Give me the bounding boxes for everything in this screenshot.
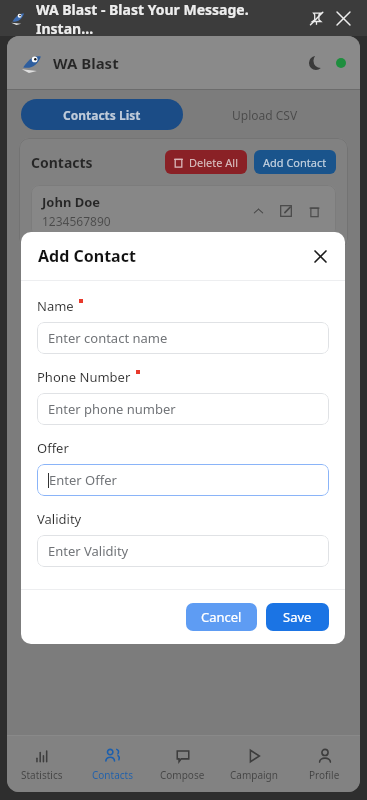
staticText: Offer: [37, 439, 69, 457]
staticText: Upload CSV: [232, 107, 298, 123]
staticText: Contacts List: [63, 107, 141, 123]
staticText: Validity: [37, 510, 82, 528]
button[interactable]: Toggle dark mode: [302, 49, 330, 77]
staticText: Statistics: [21, 768, 63, 782]
button[interactable]: Enter Offer: [37, 464, 329, 496]
staticText: Contacts: [92, 768, 133, 782]
button[interactable]: Enter contact name: [37, 322, 329, 354]
staticText: Enter contact name: [48, 329, 168, 347]
staticText: Name: [37, 297, 74, 315]
staticText: 1234567890: [42, 213, 111, 229]
button[interactable]: Add Contact: [254, 150, 336, 174]
button[interactable]: Close dialog: [305, 241, 335, 271]
button[interactable]: Delete All: [165, 150, 247, 174]
staticText: Compose: [160, 768, 205, 782]
staticText: Save: [283, 608, 312, 626]
staticText: Cancel: [201, 608, 242, 626]
button[interactable]: Campaign: [218, 736, 289, 792]
staticText: WA Blast: [53, 53, 119, 73]
button[interactable]: Profile: [289, 736, 360, 792]
button[interactable]: Enter Validity: [37, 535, 329, 567]
button[interactable]: Save: [266, 603, 329, 631]
button[interactable]: Cancel: [186, 603, 257, 631]
staticText: Contacts: [31, 153, 93, 172]
button[interactable]: Close: [329, 4, 357, 32]
button[interactable]: Compose: [147, 736, 218, 792]
staticText: Delete All: [189, 155, 239, 170]
button[interactable]: Contacts List: [21, 99, 183, 130]
button[interactable]: Collapse: [247, 200, 269, 222]
button[interactable]: Edit contact: [275, 200, 297, 222]
staticText: Add Contact: [263, 155, 327, 170]
staticText: Add Contact: [38, 245, 136, 267]
staticText: Phone Number: [37, 368, 131, 386]
staticText: Profile: [309, 768, 340, 782]
staticText: John Doe: [42, 193, 101, 211]
button[interactable]: Contacts: [77, 736, 147, 792]
button[interactable]: Enter phone number: [37, 393, 329, 425]
button[interactable]: Statistics: [7, 736, 77, 792]
button[interactable]: Delete contact: [303, 200, 325, 222]
button[interactable]: Unpin window: [303, 5, 329, 31]
button[interactable]: Upload CSV: [183, 99, 346, 130]
button[interactable]: John Doe: [31, 185, 336, 237]
staticText: Enter phone number: [48, 400, 176, 418]
staticText: Enter Validity: [48, 542, 129, 560]
staticText: Enter Offer: [49, 471, 117, 489]
staticText: WA Blast - Blast Your Message. Instan…: [36, 0, 299, 36]
staticText: Campaign: [230, 768, 278, 782]
